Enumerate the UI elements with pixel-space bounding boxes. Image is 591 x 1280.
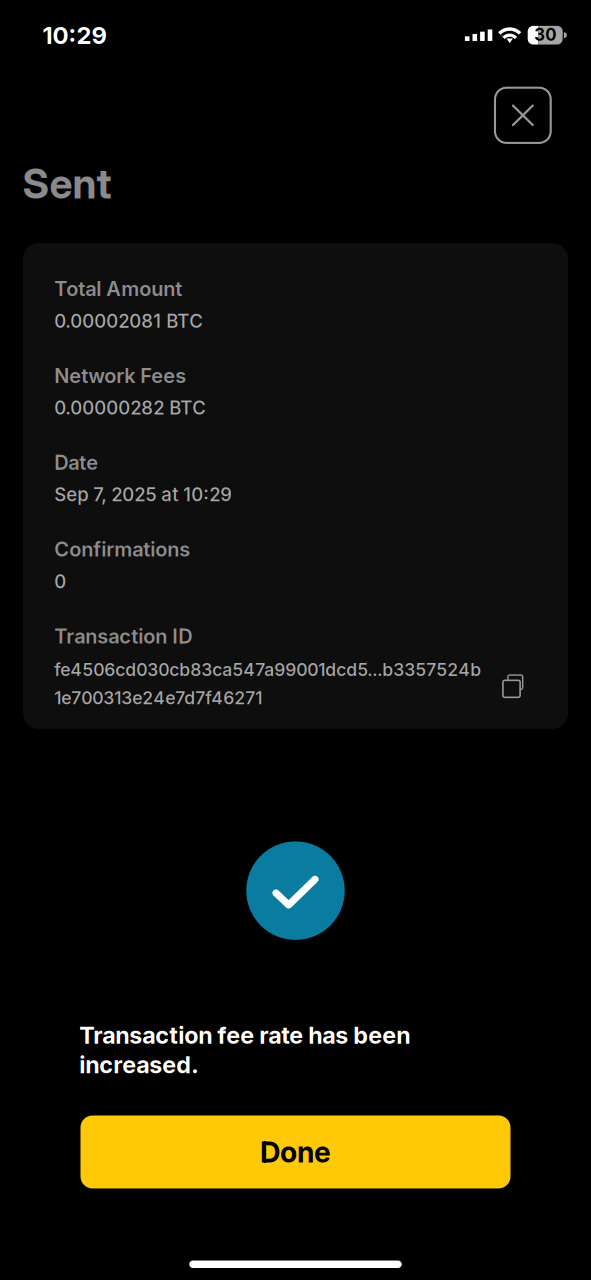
staticText: 1e700313e24e7d7f46271 xyxy=(54,687,262,708)
staticText: Confirmations xyxy=(54,537,190,561)
staticText: increased. xyxy=(79,1050,198,1079)
staticText: Transaction ID xyxy=(54,624,192,648)
staticText: Sent xyxy=(22,159,111,208)
staticText: Total Amount xyxy=(54,277,182,301)
staticText: Done xyxy=(260,1135,331,1169)
staticText: 10:29 xyxy=(43,21,107,50)
staticText: fe4506cd030cb83ca547a99001dcd5...b335752… xyxy=(54,659,481,680)
staticText: Network Fees xyxy=(54,363,186,388)
staticText: Date xyxy=(54,450,98,475)
button[interactable]: Copy transaction ID xyxy=(502,659,524,697)
button[interactable]: Close xyxy=(495,88,551,143)
staticText: 0.00002081 BTC xyxy=(54,310,203,332)
staticText: 0 xyxy=(54,570,66,593)
staticText: 30 xyxy=(534,25,556,45)
staticText: Transaction fee rate has been xyxy=(79,1021,410,1049)
button[interactable]: Done xyxy=(80,1115,510,1188)
staticText: 0.00000282 BTC xyxy=(54,396,206,419)
staticText: Sep 7, 2025 at 10:29 xyxy=(54,483,232,506)
